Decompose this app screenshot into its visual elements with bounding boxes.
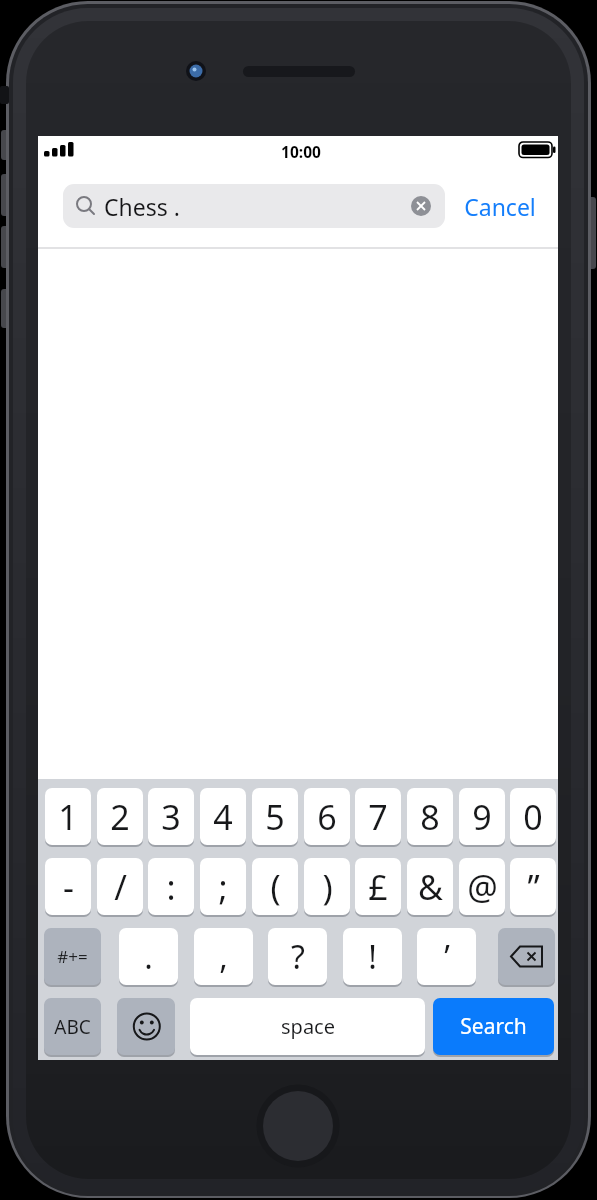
staticText: 1 bbox=[58, 794, 78, 840]
button[interactable]: 9 bbox=[459, 788, 505, 845]
button[interactable]: - bbox=[45, 858, 91, 915]
staticText: 4 bbox=[213, 794, 233, 840]
button[interactable]: & bbox=[407, 858, 453, 915]
button[interactable]: 3 bbox=[148, 788, 194, 845]
button[interactable]: #+= bbox=[44, 928, 101, 985]
button[interactable]: 7 bbox=[355, 788, 401, 845]
staticText: 9 bbox=[472, 794, 492, 840]
button[interactable]: Search bbox=[433, 998, 554, 1055]
button[interactable]: ABC bbox=[44, 998, 101, 1055]
button[interactable]: space bbox=[190, 998, 425, 1055]
staticText: #+= bbox=[57, 945, 88, 968]
button[interactable]: 1 bbox=[45, 788, 91, 845]
staticText: Chess . bbox=[104, 191, 180, 222]
staticText: ; bbox=[218, 864, 228, 910]
staticText: 5 bbox=[265, 794, 285, 840]
staticText: ? bbox=[291, 935, 305, 979]
staticText: / bbox=[114, 864, 127, 910]
button[interactable]: 6 bbox=[304, 788, 350, 845]
staticText: ” bbox=[527, 864, 540, 910]
staticText: 6 bbox=[317, 794, 337, 840]
button[interactable]: ( bbox=[252, 858, 298, 915]
staticText: space bbox=[281, 1013, 335, 1040]
button[interactable]: Cancel bbox=[445, 184, 555, 228]
staticText: - bbox=[63, 864, 74, 910]
button[interactable]: £ bbox=[355, 858, 401, 915]
staticText: ’ bbox=[444, 935, 450, 979]
button[interactable]: ? bbox=[268, 928, 327, 985]
staticText: . bbox=[144, 935, 153, 979]
staticText: ABC bbox=[54, 1014, 91, 1040]
button[interactable]: 0 bbox=[510, 788, 556, 845]
staticText: @ bbox=[467, 864, 498, 910]
staticText: 2 bbox=[110, 794, 130, 840]
button[interactable] bbox=[117, 998, 175, 1055]
staticText: 8 bbox=[420, 794, 440, 840]
staticText: 3 bbox=[161, 794, 181, 840]
staticText: & bbox=[418, 864, 443, 910]
button[interactable]: : bbox=[148, 858, 194, 915]
staticText: 10:00 bbox=[281, 141, 321, 162]
button[interactable]: , bbox=[194, 928, 253, 985]
staticText: ! bbox=[368, 935, 377, 979]
button[interactable]: ; bbox=[200, 858, 246, 915]
button[interactable]: @ bbox=[459, 858, 505, 915]
button[interactable] bbox=[498, 928, 555, 985]
button[interactable]: . bbox=[119, 928, 178, 985]
button[interactable]: ! bbox=[343, 928, 402, 985]
staticText: £ bbox=[368, 864, 388, 910]
button[interactable]: 2 bbox=[97, 788, 143, 845]
button[interactable]: ” bbox=[510, 858, 556, 915]
staticText: ( bbox=[270, 864, 281, 910]
staticText: , bbox=[219, 935, 228, 979]
button[interactable]: Chess . bbox=[63, 184, 445, 228]
button[interactable]: 5 bbox=[252, 788, 298, 845]
staticText: 7 bbox=[368, 794, 388, 840]
staticText: Search bbox=[460, 1012, 527, 1041]
staticText: 0 bbox=[523, 794, 543, 840]
button[interactable]: 4 bbox=[200, 788, 246, 845]
staticText: Cancel bbox=[464, 191, 536, 222]
button[interactable]: / bbox=[97, 858, 143, 915]
staticText: ) bbox=[322, 864, 333, 910]
staticText: : bbox=[166, 864, 176, 910]
button[interactable]: ’ bbox=[417, 928, 476, 985]
button[interactable]: ) bbox=[304, 858, 350, 915]
button[interactable]: 8 bbox=[407, 788, 453, 845]
